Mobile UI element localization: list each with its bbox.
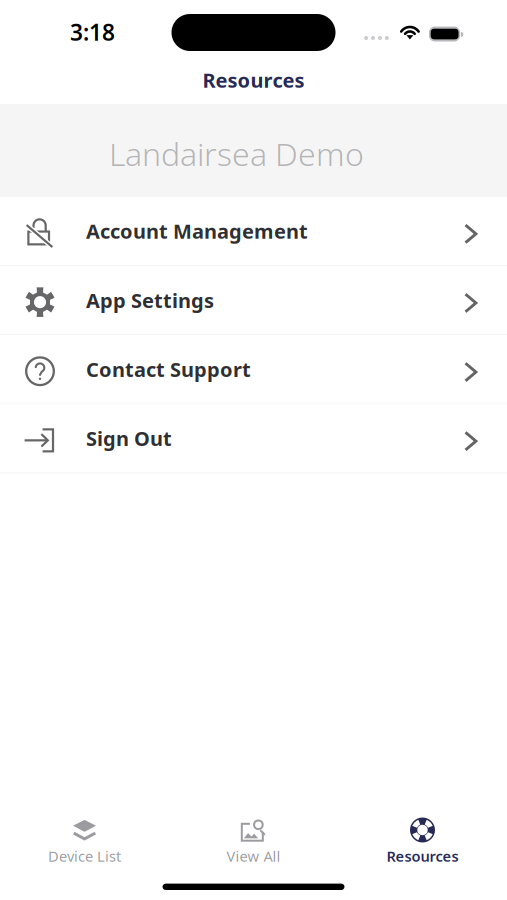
staticText: Sign Out xyxy=(86,425,172,452)
button[interactable]: View All xyxy=(169,817,338,863)
button[interactable]: App Settings xyxy=(0,266,507,334)
staticText: Landairsea Demo xyxy=(109,132,364,175)
staticText: View All xyxy=(226,846,280,866)
staticText: 3:18 xyxy=(70,17,115,47)
button[interactable]: Landairsea Demo xyxy=(0,104,507,197)
staticText: Resources xyxy=(386,846,458,866)
button[interactable]: Account Management xyxy=(0,197,507,265)
button[interactable]: Sign Out xyxy=(0,404,507,472)
staticText: Contact Support xyxy=(86,356,251,383)
staticText: Account Management xyxy=(86,218,308,244)
button[interactable]: Resources xyxy=(338,817,507,863)
staticText: App Settings xyxy=(86,287,214,313)
staticText: Resources xyxy=(202,67,304,93)
button[interactable]: Device List xyxy=(0,817,169,863)
staticText: Device List xyxy=(48,846,121,866)
button[interactable]: Contact Support xyxy=(0,335,507,403)
